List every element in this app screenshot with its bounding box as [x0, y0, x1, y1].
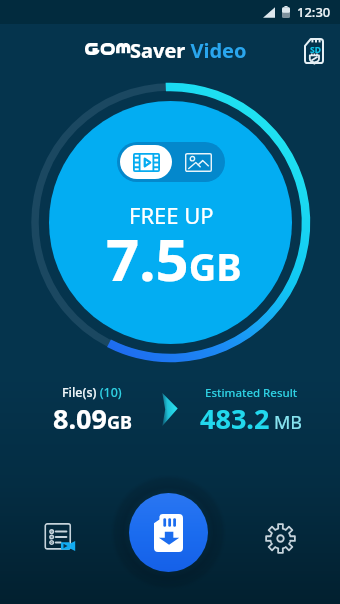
staticText: Estimated Result [205, 385, 298, 401]
staticText: 12:30 [297, 3, 331, 21]
staticText: 483.2 MB [200, 400, 303, 437]
button[interactable]: Settings [254, 512, 306, 564]
staticText: Saver Video [130, 37, 247, 64]
staticText: 8.09GB [53, 400, 132, 437]
button[interactable]: Save to SD card [129, 493, 208, 572]
staticText: 7.5GB [106, 219, 242, 298]
button[interactable]: Video list [34, 512, 86, 564]
button[interactable]: Images [172, 142, 225, 182]
staticText: FREE UP [129, 200, 214, 230]
staticText: SD [310, 44, 321, 56]
button[interactable]: Videos [120, 145, 172, 179]
button[interactable]: SD card storage [296, 33, 332, 69]
staticText: File(s) (10) [62, 384, 122, 401]
